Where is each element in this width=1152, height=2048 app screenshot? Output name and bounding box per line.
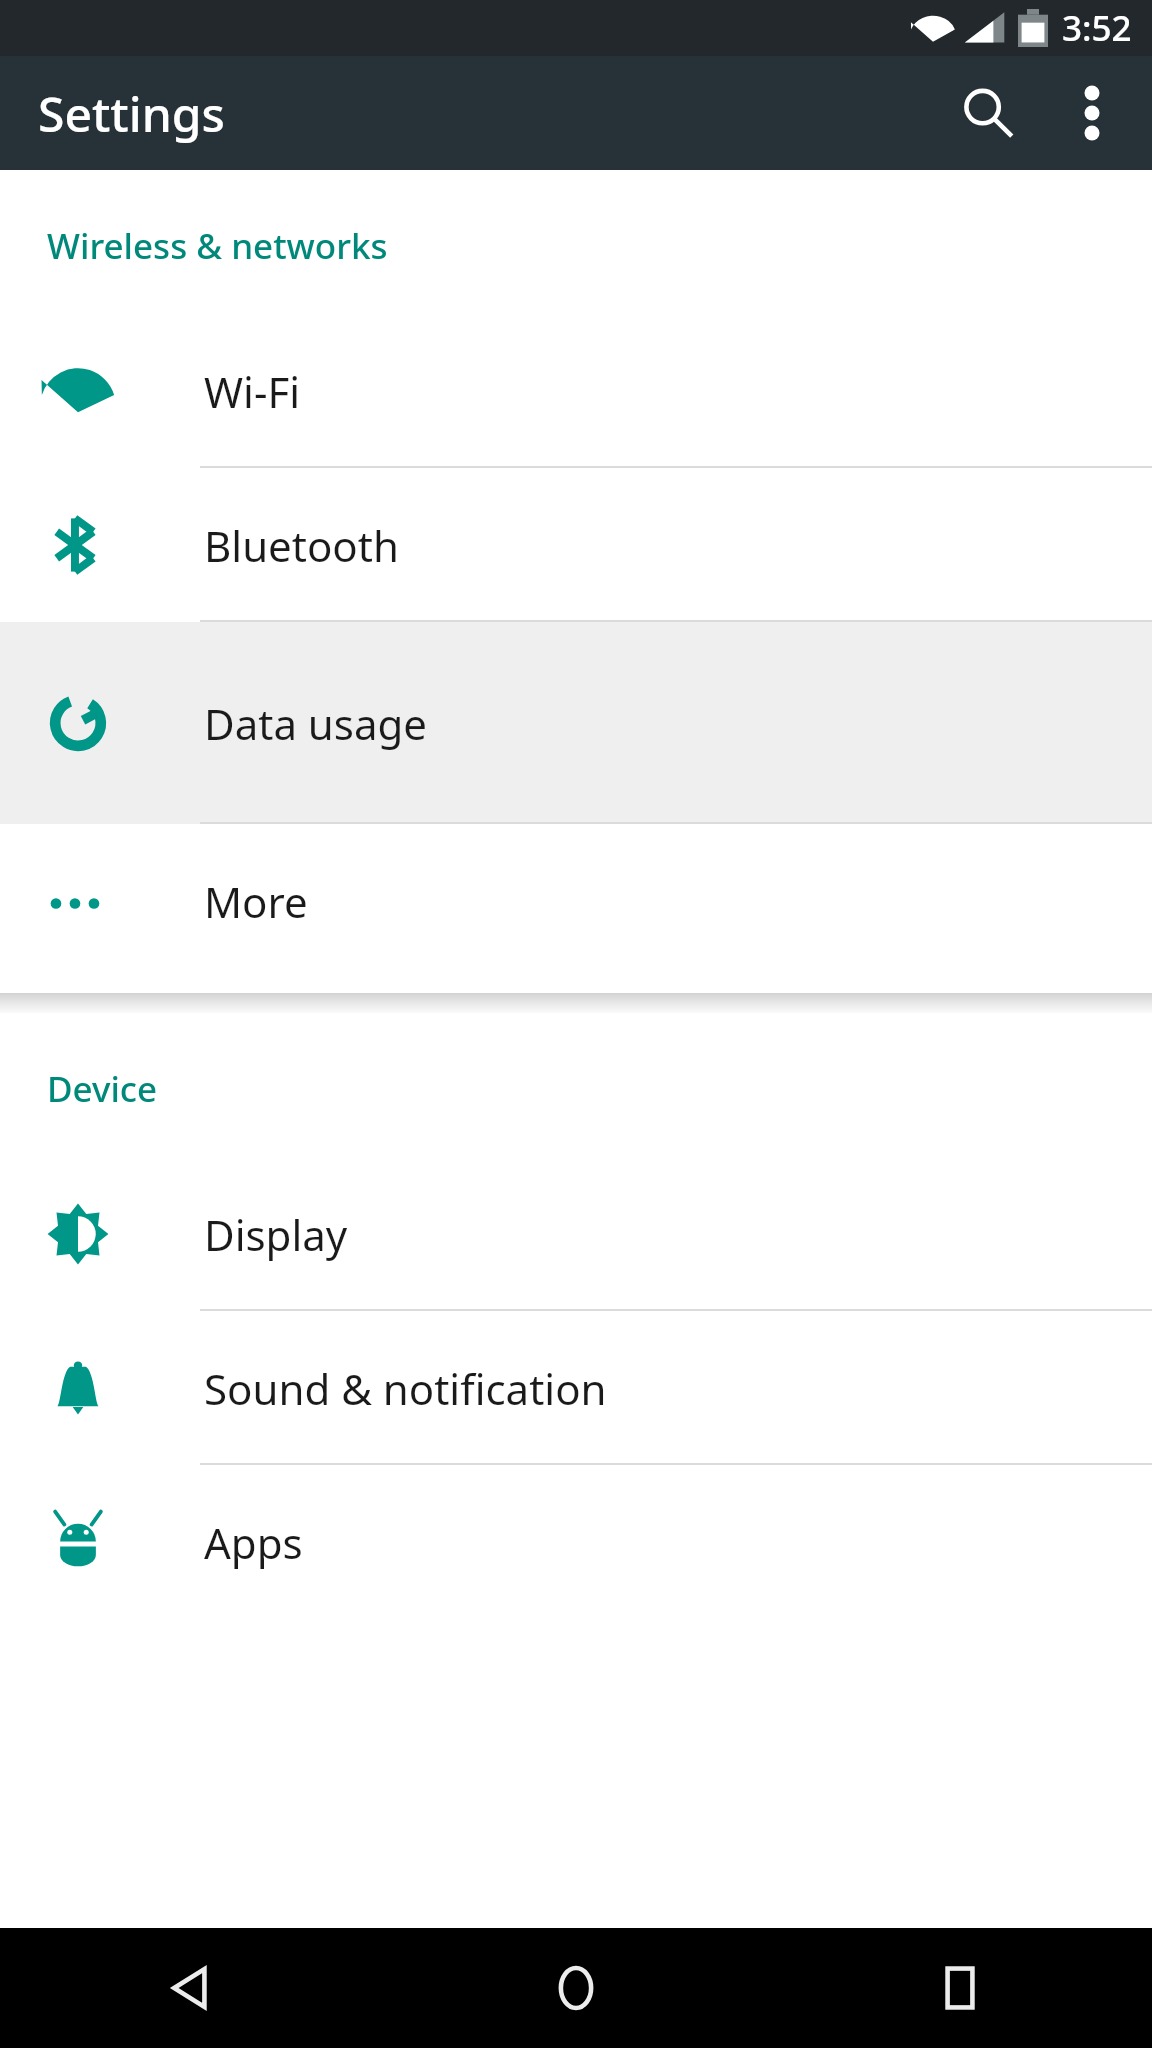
staticText: Wi-Fi	[204, 363, 301, 420]
button[interactable]: Apps	[0, 1465, 1152, 1619]
staticText: Data usage	[204, 695, 428, 752]
button[interactable]: Data usage	[0, 622, 1152, 824]
button[interactable]: More options	[1044, 65, 1140, 161]
button[interactable]: Sound & notification	[0, 1311, 1152, 1465]
button[interactable]: Search	[932, 57, 1044, 169]
button[interactable]: More	[0, 824, 1152, 979]
staticText: Bluetooth	[204, 517, 399, 574]
staticText: Apps	[204, 1514, 303, 1571]
button[interactable]: Home	[384, 1928, 768, 2048]
staticText: Device	[47, 1065, 158, 1113]
staticText: Display	[204, 1206, 348, 1263]
button[interactable]: Recent apps	[768, 1928, 1152, 2048]
staticText: Wireless & networks	[47, 222, 388, 270]
staticText: More	[204, 873, 308, 930]
button[interactable]: Wi-Fi	[0, 314, 1152, 468]
button[interactable]: Back	[0, 1928, 384, 2048]
button[interactable]: Bluetooth	[0, 468, 1152, 622]
staticText: Settings	[38, 81, 225, 146]
button[interactable]: Display	[0, 1157, 1152, 1311]
staticText: Sound & notification	[204, 1360, 607, 1417]
staticText: 3:52	[1062, 4, 1132, 52]
